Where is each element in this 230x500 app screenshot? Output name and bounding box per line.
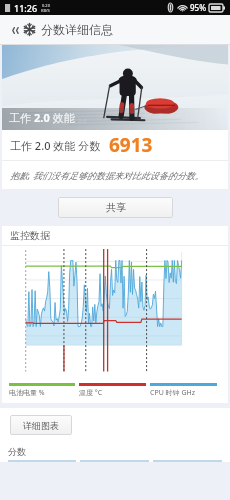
staticText: 2.0	[34, 110, 50, 125]
staticText: 监控数据	[10, 229, 50, 242]
staticText: 温度 °C	[79, 388, 103, 398]
staticText: 抱歉, 我们没有足够的数据来对比此设备的分数。	[10, 169, 204, 181]
staticText: 工作 2.0 效能 分数	[10, 138, 101, 153]
staticText: 工作	[9, 110, 34, 125]
staticText: 效能	[50, 110, 75, 125]
button[interactable]: 共享	[58, 197, 173, 218]
staticText: 电池电量 %	[9, 388, 45, 398]
staticText: 详细图表	[23, 420, 59, 431]
staticText: 11:26	[14, 2, 38, 14]
staticText: 共享	[106, 201, 126, 214]
staticText: 95%	[190, 2, 206, 13]
staticText: 6913	[109, 132, 153, 158]
button[interactable]: Back	[7, 22, 23, 38]
button[interactable]: Back	[0, 15, 230, 44]
staticText: CPU 时钟 GHz	[150, 388, 195, 398]
staticText: KB/S	[41, 8, 50, 13]
staticText: 2.0	[78, 117, 87, 125]
staticText: 分数	[8, 446, 26, 457]
staticText: 分数详细信息	[41, 22, 113, 37]
staticText: 0.20	[42, 3, 50, 8]
button[interactable]: 详细图表	[10, 415, 72, 435]
